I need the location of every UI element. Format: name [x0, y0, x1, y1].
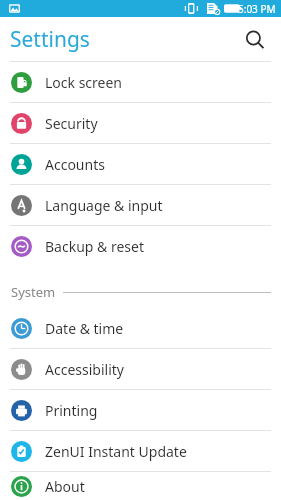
button[interactable]: Accounts [0, 144, 281, 184]
staticText: Lock screen [45, 73, 123, 92]
button[interactable]: Date & time [0, 308, 281, 348]
staticText: Date & time [45, 319, 124, 338]
staticText: Security [45, 114, 98, 133]
button[interactable]: Lock screen [0, 62, 281, 102]
staticText: Accessibility [45, 360, 124, 379]
staticText: About [45, 477, 85, 496]
staticText: Backup & reset [45, 237, 144, 256]
button[interactable]: Security [0, 103, 281, 143]
staticText: Accounts [45, 155, 105, 174]
staticText: Settings [10, 25, 90, 54]
staticText: ZenUI Instant Update [45, 442, 187, 461]
button[interactable]: Language & input [0, 185, 281, 225]
staticText: 5:03 PM [238, 2, 276, 16]
button[interactable]: Printing [0, 390, 281, 430]
staticText: System [11, 283, 56, 301]
button[interactable]: About [0, 472, 281, 500]
button[interactable]: Search [237, 22, 273, 58]
staticText: Language & input [45, 196, 163, 215]
button[interactable]: Accessibility [0, 349, 281, 389]
button[interactable]: ZenUI Instant Update [0, 431, 281, 471]
button[interactable]: Backup & reset [0, 226, 281, 266]
staticText: Printing [45, 401, 98, 420]
